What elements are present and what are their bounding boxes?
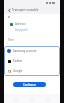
staticText: Samsung account (13, 49, 37, 53)
staticText: Titre (8, 38, 14, 42)
staticText: Transport routable (12, 8, 39, 12)
button[interactable]: Continuer (13, 82, 46, 87)
button[interactable]: Recents (44, 95, 52, 103)
staticText: Continuer (23, 83, 36, 87)
button[interactable]: Samsung account (4, 46, 60, 56)
button[interactable]: Back (6, 7, 12, 13)
button[interactable]: Back (12, 95, 20, 103)
staticText: Twitter (13, 59, 23, 63)
button[interactable]: Google (4, 66, 60, 76)
button[interactable]: Twitter (4, 56, 60, 66)
staticText: Google (13, 69, 23, 73)
staticText: Adresse (15, 22, 26, 26)
button[interactable]: Home (28, 95, 36, 103)
staticText: Enregistré (15, 28, 28, 32)
